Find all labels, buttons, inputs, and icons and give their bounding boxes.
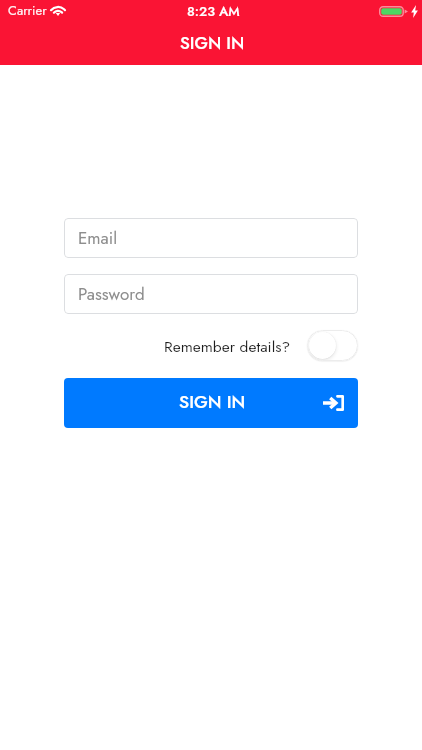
staticText: Carrier	[8, 1, 47, 20]
staticText: SIGN IN	[180, 31, 245, 56]
staticText: 8:23 AM	[187, 2, 240, 22]
staticText: SIGN IN	[179, 389, 246, 414]
staticText: Email	[78, 226, 118, 251]
staticText: Password	[78, 282, 145, 307]
button[interactable]: SIGN IN	[64, 378, 358, 428]
button[interactable]: Remember details toggle	[307, 330, 358, 361]
button[interactable]: Password	[64, 274, 358, 314]
staticText: Remember details?	[164, 335, 291, 357]
button[interactable]: Email	[64, 218, 358, 258]
